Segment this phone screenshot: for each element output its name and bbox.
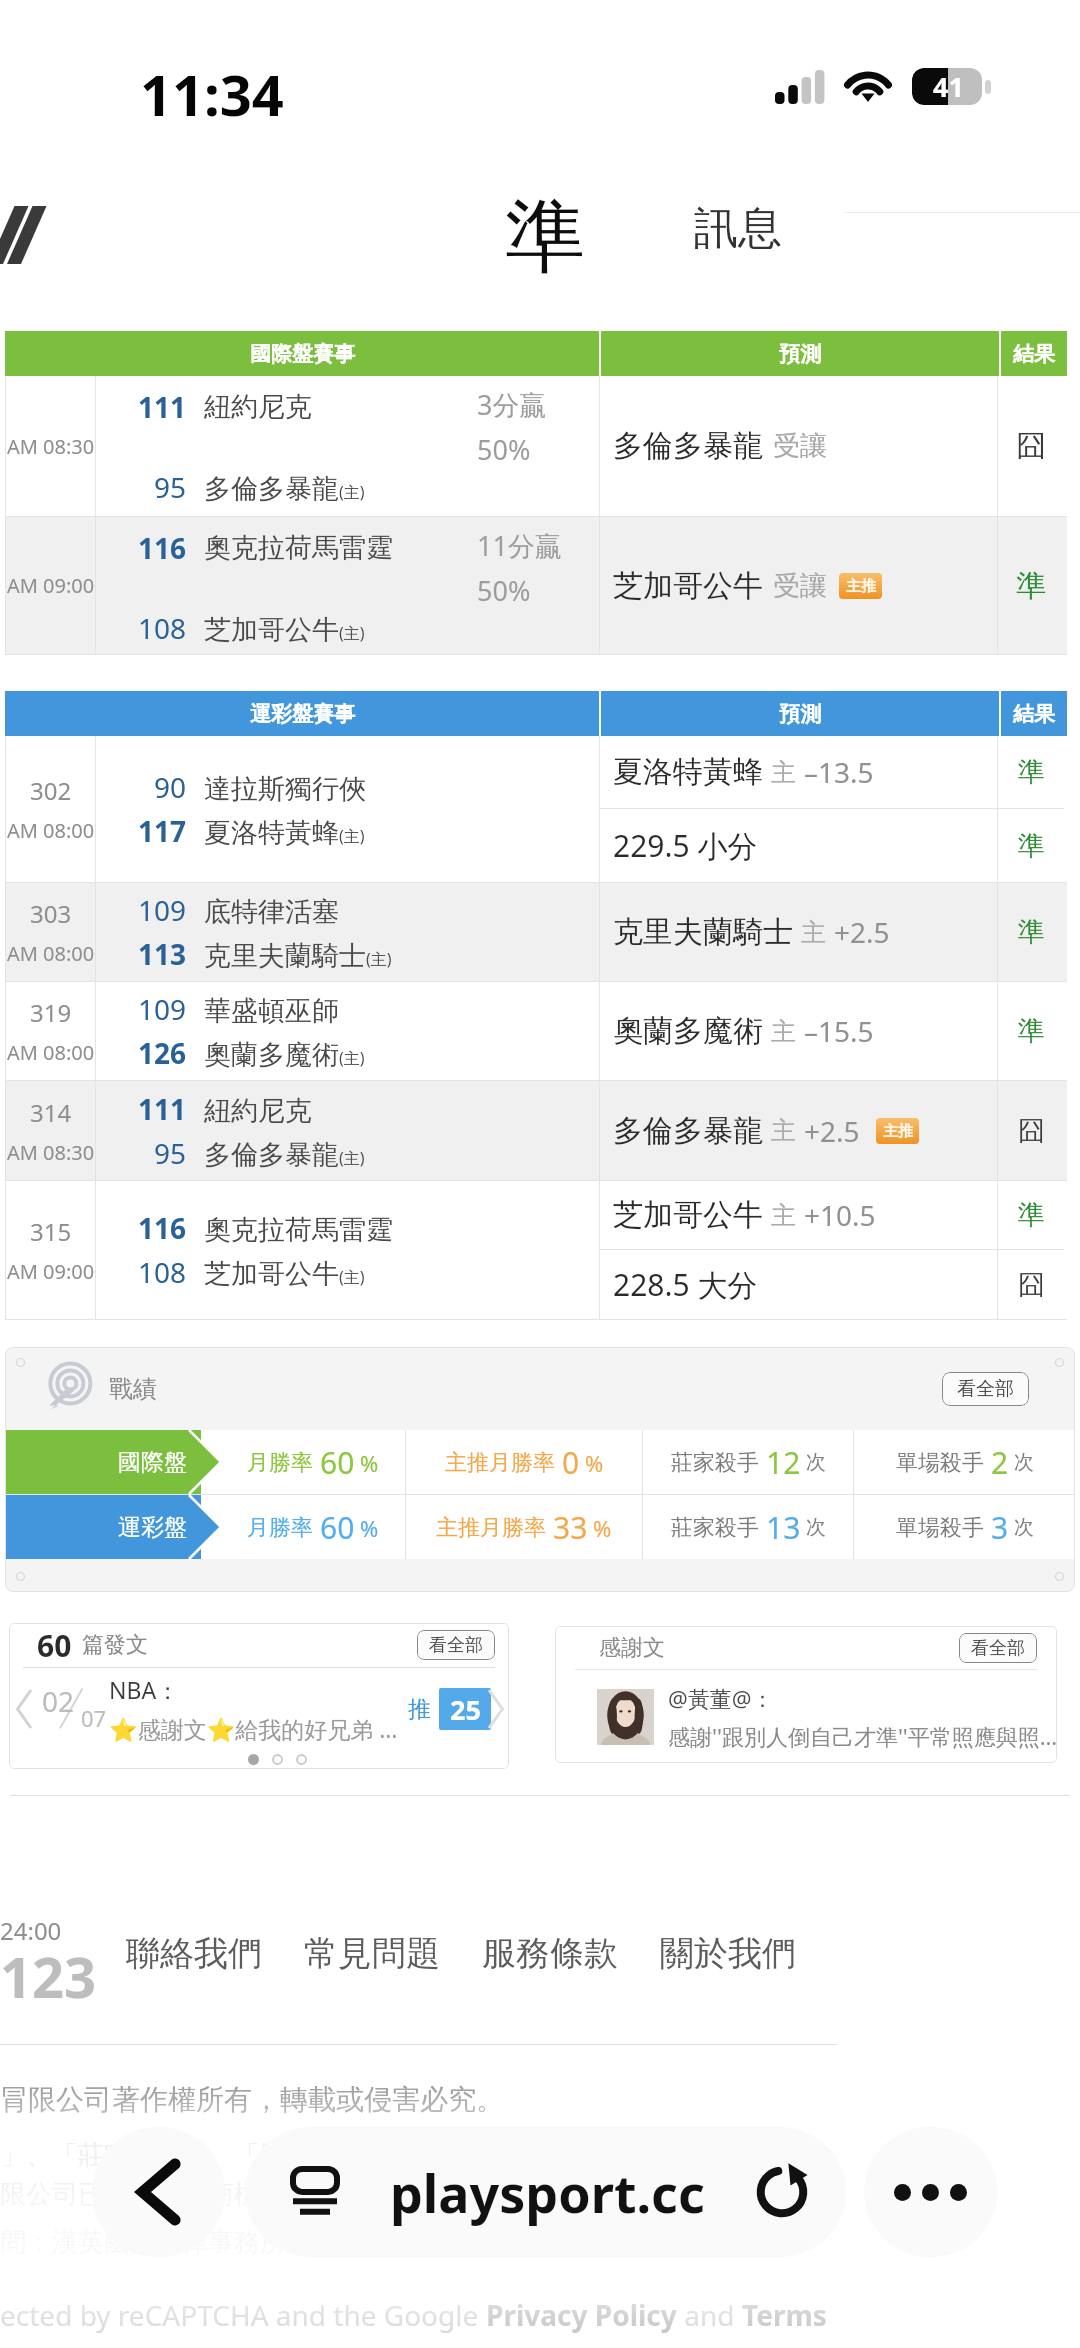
staticText: AM 08:00	[7, 817, 95, 844]
staticText: 推	[408, 1695, 431, 1724]
staticText: 113	[96, 935, 186, 973]
staticText: 多倫多暴龍	[613, 427, 763, 465]
staticText: 囧	[1016, 427, 1046, 465]
staticText: 主	[771, 1200, 796, 1231]
staticText: 限公司已依法取得商標註冊證，任何人不得使用	[0, 2178, 546, 2211]
button[interactable]: 常見問題	[283, 1926, 461, 1981]
staticText: NBA：	[109, 1674, 180, 1705]
staticText: 芝加哥公牛	[613, 1196, 763, 1234]
staticText: 95	[96, 1134, 186, 1172]
staticText: 主	[771, 1016, 796, 1047]
staticText: AM 08:30	[7, 1139, 95, 1166]
staticText: 結果	[1013, 341, 1055, 367]
staticText: (主)	[339, 481, 365, 503]
staticText: 聯絡我們	[126, 1932, 262, 1975]
staticText: 126	[96, 1034, 186, 1072]
button[interactable]: 看全部	[959, 1633, 1037, 1663]
staticText: 準	[1018, 1014, 1045, 1048]
staticText: 關於我們	[660, 1932, 796, 1975]
staticText: 116	[96, 529, 186, 567]
button[interactable]: 看全部	[942, 1372, 1029, 1406]
staticText: 25	[450, 1691, 481, 1728]
staticText: –13.5	[804, 753, 874, 791]
staticText: 108	[96, 609, 186, 647]
staticText: 囧	[1018, 1268, 1045, 1302]
staticText: 主推月勝率	[436, 1514, 546, 1542]
button[interactable]: Next post	[483, 1679, 509, 1739]
staticText: 國際盤	[118, 1448, 187, 1477]
staticText: 準	[1016, 567, 1046, 605]
staticText: 國際盤賽事	[250, 341, 355, 367]
button[interactable]: Playsport home	[0, 206, 42, 264]
staticText: 41	[933, 68, 964, 105]
button[interactable]: 看全部	[417, 1630, 495, 1660]
staticText: +2.5	[804, 1112, 860, 1150]
button[interactable]: 314	[5, 1081, 1067, 1180]
staticText: 111	[96, 388, 186, 426]
button[interactable]: 303	[5, 883, 1067, 981]
button[interactable]: 319	[5, 982, 1067, 1080]
staticText: 109	[96, 891, 186, 929]
staticText: 芝加哥公牛	[204, 613, 339, 647]
staticText: 95	[96, 468, 186, 506]
staticText: 預測	[779, 341, 821, 367]
button[interactable]: Back	[92, 2127, 225, 2257]
staticText: 60	[320, 1507, 355, 1548]
button[interactable]: 聯絡我們	[105, 1926, 283, 1981]
staticText: 109	[96, 990, 186, 1028]
staticText: 12	[766, 1442, 801, 1483]
staticText: 116	[96, 1209, 186, 1247]
staticText: 3分贏	[477, 386, 547, 423]
staticText: 克里夫蘭騎士	[613, 913, 793, 951]
staticText: 33	[553, 1507, 588, 1548]
staticText: 冐限公司著作權所有，轉載或侵害必究。	[0, 2082, 504, 2117]
staticText: 」、「莊家殺手」、「單場殺手」（較準）」「獲勝」等 …	[0, 2136, 678, 2172]
staticText: (主)	[339, 1047, 365, 1069]
staticText: 夏洛特黃蜂	[204, 816, 339, 850]
staticText: (主)	[366, 948, 392, 970]
staticText: 主	[771, 757, 796, 788]
button[interactable]: AM 08:30	[5, 376, 1067, 516]
staticText: 229.5 小分	[613, 825, 758, 866]
staticText: 3	[991, 1507, 1009, 1548]
staticText: 次	[1014, 1515, 1034, 1540]
staticText: 319	[30, 996, 72, 1029]
staticText: (主)	[339, 1266, 365, 1288]
staticText: ⭐感謝文⭐給我的好兄弟 …	[109, 1713, 398, 1744]
staticText: Privacy Policy	[486, 2296, 677, 2334]
staticText: 莊家殺手	[671, 1514, 759, 1542]
button[interactable]: AM 09:00	[5, 517, 1067, 654]
other: Reload	[754, 2164, 810, 2220]
staticText: 24:00	[0, 1914, 62, 1947]
staticText: –15.5	[804, 1012, 874, 1050]
staticText: AM 08:00	[7, 940, 95, 967]
staticText: 主推月勝率	[445, 1449, 555, 1477]
button[interactable]: Previous post	[9, 1679, 39, 1739]
button[interactable]: 315	[5, 1181, 1067, 1319]
button[interactable]: Reader view	[245, 2127, 846, 2257]
staticText: 次	[806, 1450, 826, 1475]
staticText: 0	[562, 1442, 580, 1483]
button[interactable]: More options	[864, 2127, 997, 2257]
staticText: 108	[96, 1253, 186, 1291]
staticText: 60	[37, 1625, 72, 1666]
button[interactable]: 服務條款	[461, 1926, 639, 1981]
staticText: 月勝率	[247, 1514, 313, 1542]
staticText: 戰績	[109, 1374, 157, 1404]
button[interactable]: 準	[495, 178, 603, 278]
staticText: 主	[801, 917, 826, 948]
staticText: 90	[96, 768, 186, 806]
staticText: 華盛頓巫師	[204, 994, 339, 1028]
staticText: 單場殺手	[896, 1449, 984, 1477]
staticText: 準	[1018, 829, 1045, 863]
staticText: %	[360, 1513, 379, 1543]
button[interactable]: 302	[5, 736, 1067, 882]
staticText: 主	[771, 1115, 796, 1146]
button[interactable]: 關於我們	[639, 1926, 817, 1981]
staticText: 芝加哥公牛	[613, 567, 763, 605]
staticText: 單場殺手	[896, 1514, 984, 1542]
staticText: 預測	[779, 701, 821, 727]
staticText: 次	[1014, 1450, 1034, 1475]
button[interactable]: 訊息	[676, 192, 800, 264]
